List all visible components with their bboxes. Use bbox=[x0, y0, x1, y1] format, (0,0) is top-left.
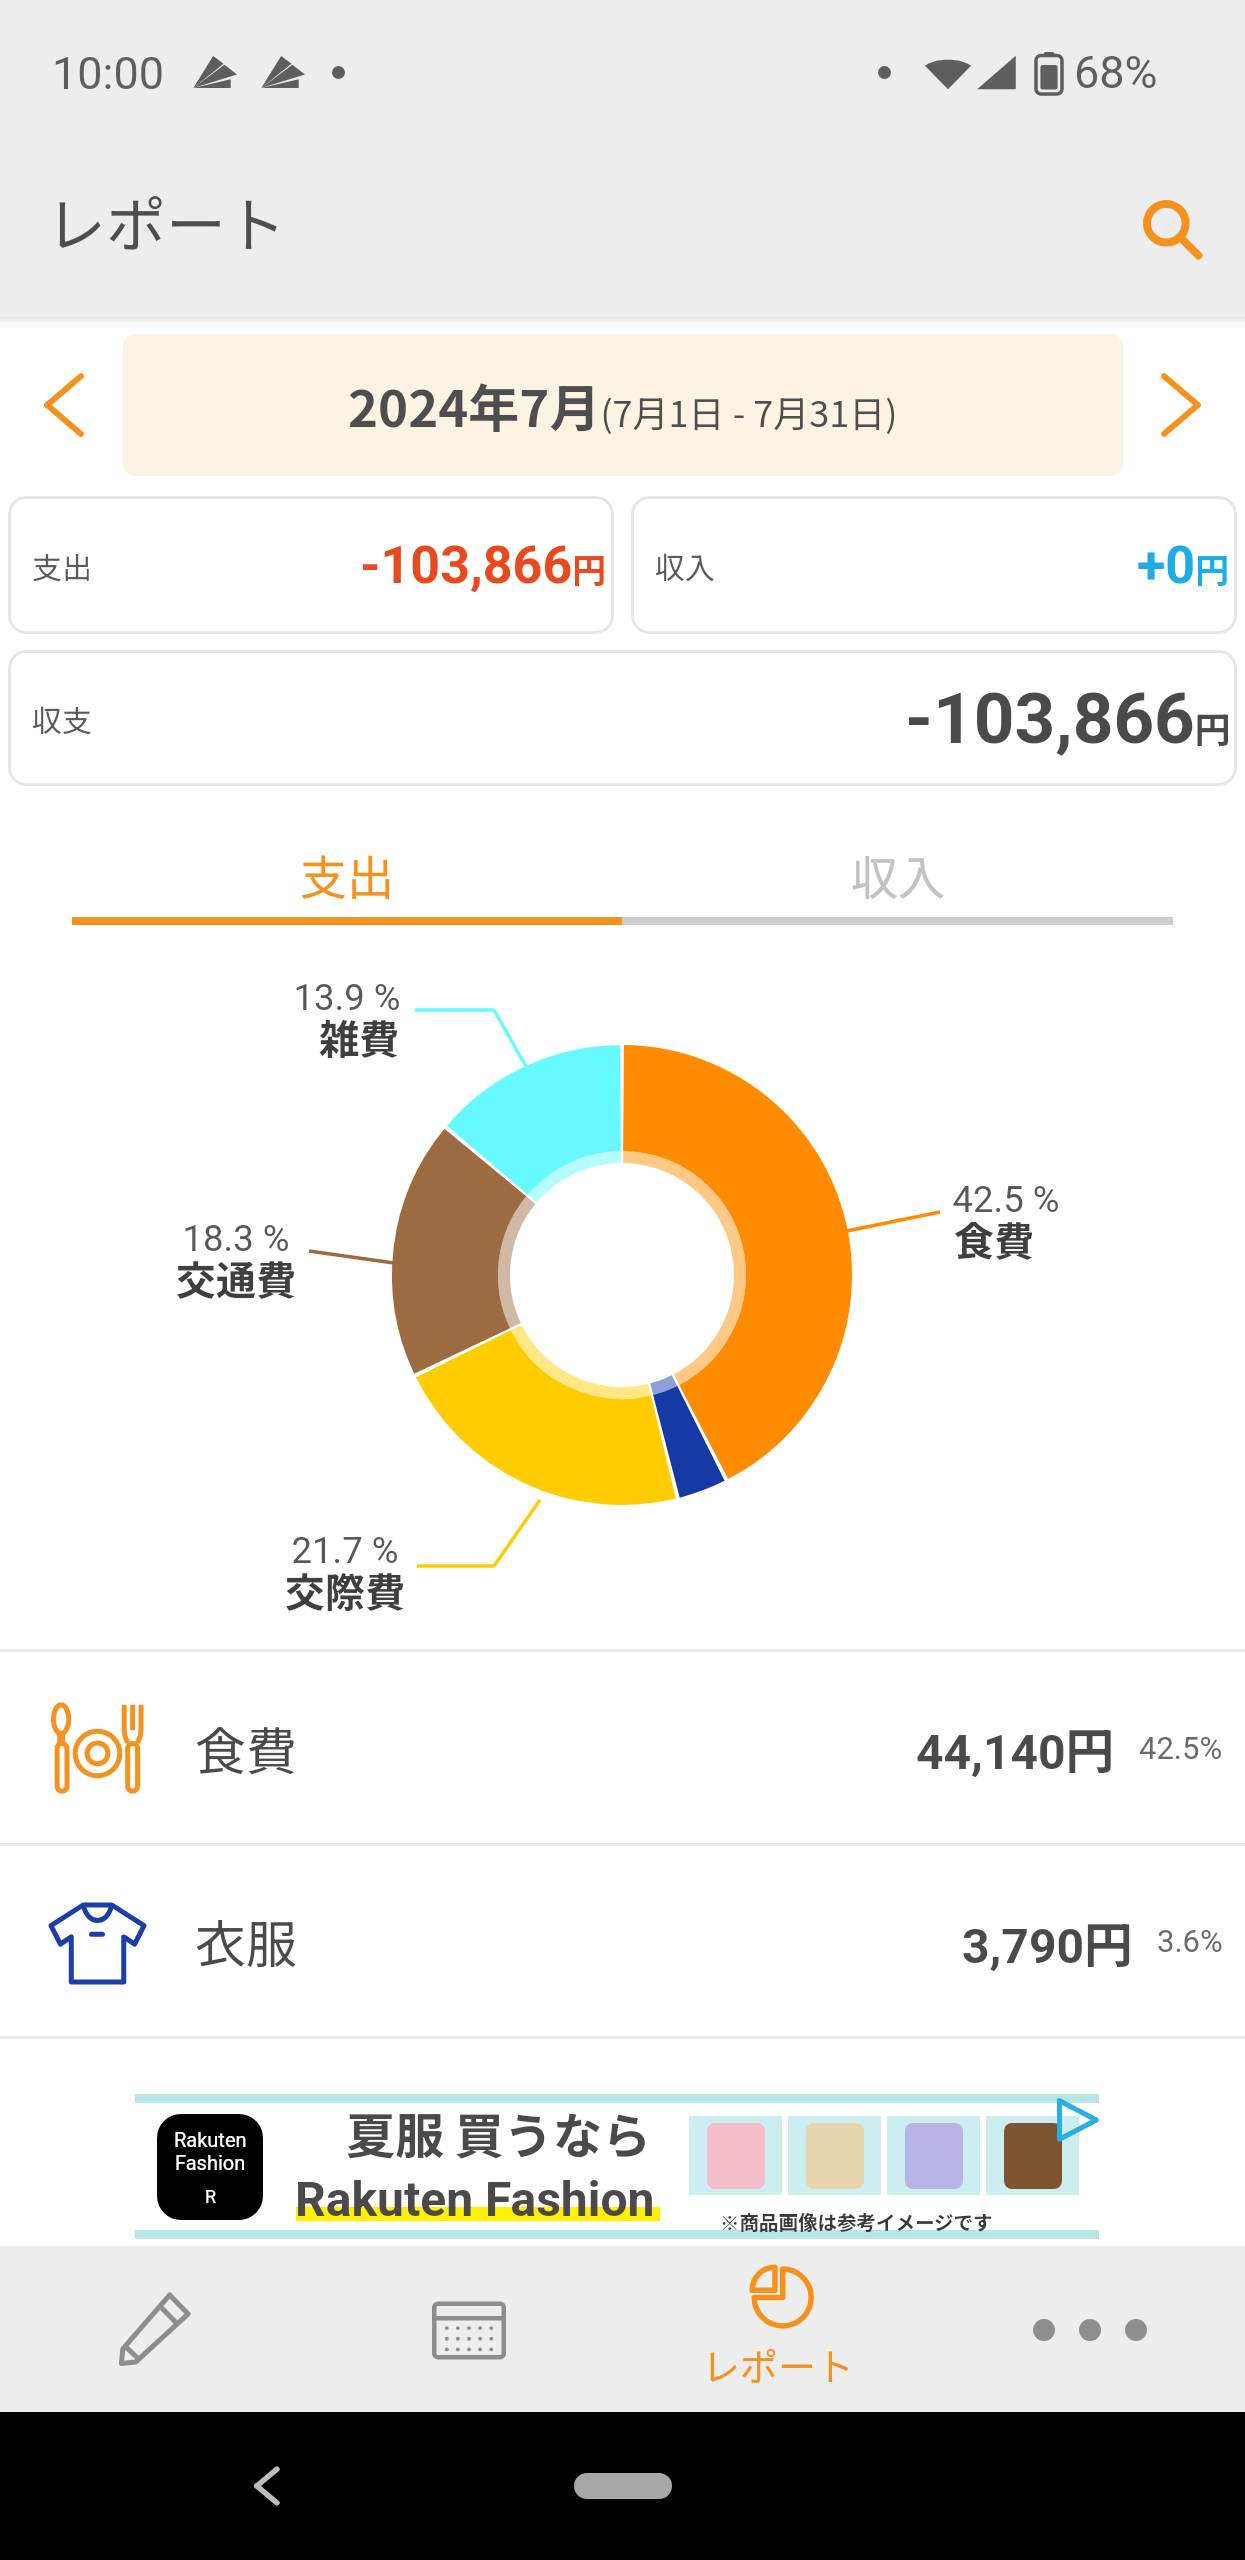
staticText: 雑費 bbox=[159, 1008, 559, 1066]
staticText: ※商品画像は参考イメージです bbox=[720, 2207, 993, 2235]
button[interactable]: 収支 bbox=[8, 650, 1237, 786]
staticText: 3,790円 bbox=[962, 1906, 1133, 1977]
staticText: -103,866円 bbox=[360, 535, 607, 596]
staticText: 食費 bbox=[794, 1210, 1194, 1268]
staticText: 13.9 % bbox=[147, 976, 547, 1019]
staticText: 68% bbox=[1074, 46, 1158, 99]
other: Back bbox=[240, 2458, 296, 2514]
staticText: -103,866円 bbox=[905, 677, 1231, 760]
staticText: 21.7 % bbox=[145, 1529, 545, 1572]
staticText: 44,140円 bbox=[916, 1712, 1115, 1783]
button[interactable]: Search bbox=[1097, 155, 1225, 283]
staticText: 3.6% bbox=[1157, 1923, 1223, 1959]
button[interactable]: Advertisement: Rakuten Fashion bbox=[135, 2094, 1099, 2239]
button[interactable]: 支出 bbox=[8, 496, 614, 634]
staticText: 食費 bbox=[195, 1711, 298, 1785]
staticText: 夏服 買うなら bbox=[346, 2097, 652, 2168]
staticText: 収支 bbox=[32, 697, 92, 740]
button[interactable]: Calendar bbox=[312, 2246, 623, 2412]
button[interactable]: Previous month bbox=[6, 340, 120, 470]
button[interactable]: More bbox=[934, 2246, 1245, 2412]
staticText: Fashion bbox=[175, 2151, 246, 2174]
staticText: 収入 bbox=[851, 840, 945, 908]
staticText: 支出 bbox=[300, 840, 394, 908]
button[interactable]: レポート bbox=[623, 2246, 934, 2412]
button[interactable]: 収入 bbox=[622, 834, 1173, 914]
button[interactable]: 収入 bbox=[631, 496, 1237, 634]
staticText: R bbox=[205, 2186, 217, 2207]
staticText: 18.3 % bbox=[36, 1217, 436, 1260]
staticText: 交際費 bbox=[145, 1561, 545, 1619]
button[interactable]: 衣服 bbox=[0, 1846, 1245, 2036]
staticText: 42.5% bbox=[1139, 1730, 1223, 1766]
staticText: Rakuten bbox=[174, 2128, 247, 2151]
staticText: +0円 bbox=[1137, 535, 1230, 596]
staticText: 10:00 bbox=[52, 47, 165, 100]
staticText: 交通費 bbox=[36, 1249, 436, 1307]
button[interactable]: 支出 bbox=[72, 834, 622, 914]
button[interactable]: Next month bbox=[1125, 340, 1239, 470]
button[interactable]: 2024年7月(7月1日 - 7月31日) bbox=[123, 334, 1123, 476]
staticText: 収入 bbox=[655, 544, 715, 587]
staticText: レポート bbox=[46, 177, 286, 264]
staticText: 42.5 % bbox=[806, 1178, 1206, 1221]
staticText: 支出 bbox=[32, 544, 92, 587]
staticText: 2024年7月(7月1日 - 7月31日) bbox=[348, 368, 898, 442]
staticText: Rakuten Fashion bbox=[295, 2171, 655, 2227]
staticText: レポート bbox=[702, 2337, 855, 2392]
staticText: 衣服 bbox=[195, 1904, 298, 1978]
button[interactable]: Input bbox=[0, 2246, 312, 2412]
button[interactable]: 食費 bbox=[0, 1652, 1245, 1843]
